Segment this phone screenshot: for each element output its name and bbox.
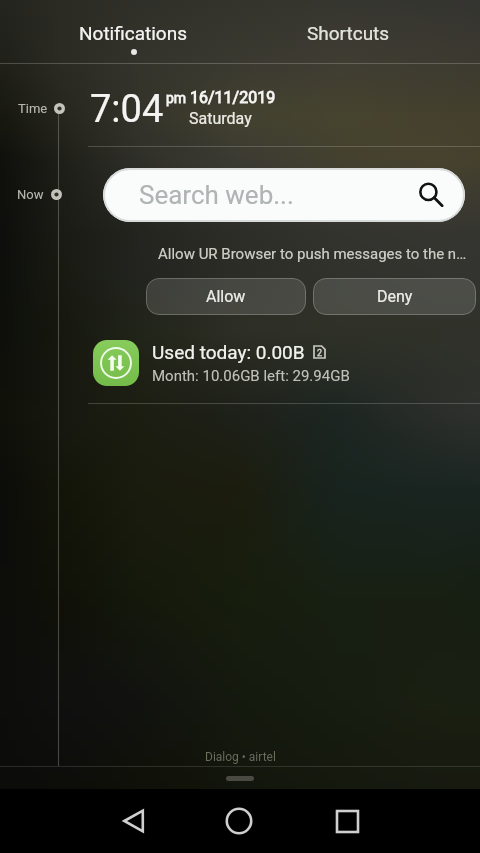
button[interactable]: Back [102,789,166,853]
staticText: Time [18,101,48,116]
button[interactable]: Used today: 0.00B [93,340,466,386]
button[interactable]: Notifications [0,0,267,64]
staticText: Dialog • airtel [205,750,276,764]
button[interactable]: Recents [315,789,379,853]
button[interactable]: Shortcuts [267,0,430,64]
staticText: Saturday [189,109,252,128]
button[interactable]: Allow [146,278,306,315]
staticText: Deny [377,287,413,306]
staticText: 16/11/2019 [190,88,276,107]
button[interactable]: Home [207,789,271,853]
staticText: 7:04 [90,87,164,132]
staticText: Used today: 0.00B [152,341,305,363]
staticText: Now [17,187,44,202]
staticText: 2 [317,348,323,359]
button[interactable]: Search web... [103,168,465,222]
button[interactable]: Deny [313,278,476,315]
staticText: Shortcuts [307,22,390,44]
staticText: Allow [206,287,246,306]
staticText: Search web... [139,180,418,210]
other: Search [418,182,444,208]
staticText: Notifications [79,22,188,44]
staticText: Allow UR Browser to push messages to the… [158,245,467,263]
staticText: pm [166,90,187,106]
staticText: Month: 10.06GB left: 29.94GB [152,367,350,385]
